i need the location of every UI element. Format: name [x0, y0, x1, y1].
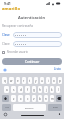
button[interactable]: k	[50, 86, 54, 93]
staticText: b	[39, 97, 41, 101]
staticText: s	[13, 88, 15, 92]
button[interactable]	[13, 32, 62, 38]
staticText: e	[17, 79, 19, 83]
button[interactable]: Recordarme	[2, 51, 5, 54]
staticText: j	[46, 88, 47, 92]
button[interactable]: b	[38, 95, 42, 102]
staticText: l	[58, 88, 59, 92]
button[interactable]: r	[22, 77, 26, 84]
staticText: d	[20, 88, 22, 92]
staticText: q	[4, 79, 6, 83]
staticText: f	[27, 88, 29, 92]
staticText: Listo	[54, 67, 61, 71]
staticText: Clave	[2, 33, 10, 37]
staticText: m	[51, 97, 54, 101]
button[interactable]: j	[44, 86, 48, 93]
button[interactable]: g	[32, 86, 36, 93]
button[interactable]: m	[50, 95, 54, 102]
staticText: z	[13, 97, 15, 101]
staticText: n	[45, 97, 47, 101]
button[interactable]: e	[16, 77, 20, 84]
button[interactable]: h	[38, 86, 42, 93]
staticText: k	[51, 88, 53, 92]
button[interactable]: espacio	[13, 104, 46, 111]
staticText: Autenticación	[18, 15, 46, 20]
button[interactable]: t	[28, 77, 32, 84]
staticText: r	[23, 79, 25, 83]
button[interactable]: w	[9, 77, 14, 84]
button[interactable]: l	[56, 86, 60, 93]
button[interactable]: u	[40, 77, 44, 84]
staticText: Recordar usuario	[7, 50, 28, 54]
staticText: p	[59, 79, 61, 83]
button[interactable]: q	[2, 77, 7, 84]
staticText: w	[10, 79, 13, 83]
button[interactable]: a	[4, 86, 9, 93]
staticText: 123	[5, 106, 9, 109]
staticText: a	[6, 88, 8, 92]
button[interactable]: Shift	[2, 95, 9, 102]
button[interactable]: Backspace	[56, 95, 62, 102]
button[interactable]: f	[25, 86, 30, 93]
button[interactable]: p	[58, 77, 62, 84]
button[interactable]: y	[34, 77, 38, 84]
button[interactable]: z	[11, 95, 16, 102]
button[interactable]: Autofill	[2, 67, 7, 72]
staticText: amarillo	[2, 6, 21, 12]
button[interactable]: i	[46, 77, 50, 84]
staticText: c	[27, 97, 29, 101]
button[interactable]: Listo	[53, 67, 62, 71]
button[interactable]: 123	[2, 104, 11, 111]
staticText: t	[29, 79, 31, 83]
button[interactable]: Continuar	[2, 58, 62, 65]
button[interactable]: c	[25, 95, 30, 102]
button[interactable]	[13, 41, 62, 47]
staticText: u	[41, 79, 43, 83]
button[interactable]: s	[11, 86, 16, 93]
staticText: i	[48, 79, 49, 83]
staticText: y	[35, 79, 37, 83]
staticText: g	[33, 88, 35, 92]
staticText: x	[20, 97, 22, 101]
button[interactable]: o	[52, 77, 56, 84]
button[interactable]: n	[44, 95, 48, 102]
staticText: 9:41	[4, 1, 11, 6]
staticText: espacio	[25, 106, 34, 109]
staticText: Recuperar contraseña	[2, 24, 33, 28]
staticText: Clave	[2, 42, 10, 46]
button[interactable]: x	[18, 95, 23, 102]
staticText: o	[53, 79, 55, 83]
staticText: h	[39, 88, 41, 92]
button[interactable]: intro	[48, 104, 62, 111]
button[interactable]: v	[32, 95, 36, 102]
button[interactable]: d	[18, 86, 23, 93]
button[interactable]: Dictado	[57, 112, 61, 116]
staticText: v	[33, 97, 35, 101]
staticText: Continuar	[25, 60, 40, 64]
button[interactable]: Cambiar idioma	[3, 112, 7, 116]
staticText: intro	[53, 106, 58, 109]
